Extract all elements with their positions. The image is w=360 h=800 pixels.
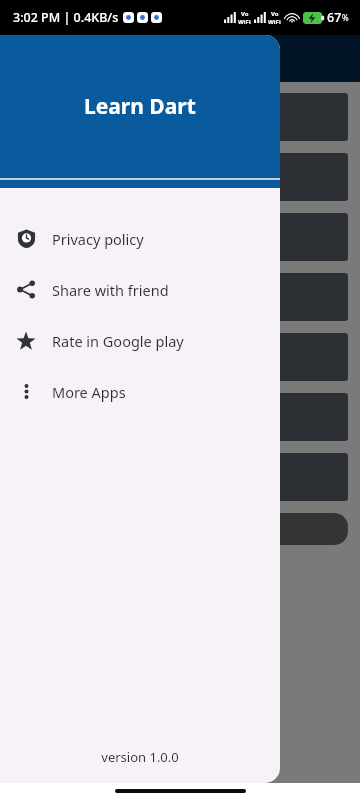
staticText: WiFi [268,18,281,26]
button[interactable]: Rate in Google play [0,315,280,366]
staticText: 3:02 PM | 0.4KB/s [13,9,119,26]
staticText: Privacy policy [52,229,144,249]
staticText: Vo [241,10,249,18]
staticText: Learn Dart [84,92,196,121]
button[interactable]: Privacy policy [0,213,280,264]
staticText: % [342,12,349,23]
staticText: version 1.0.0 [0,748,280,766]
staticText: 67 [327,9,342,26]
button[interactable]: More Apps [0,366,280,417]
staticText: WiFi [238,18,251,26]
staticText: Rate in Google play [52,331,184,351]
staticText: Vo [271,10,279,18]
staticText: More Apps [52,382,126,402]
staticText: Share with friend [52,280,169,300]
button[interactable]: Share with friend [0,264,280,315]
